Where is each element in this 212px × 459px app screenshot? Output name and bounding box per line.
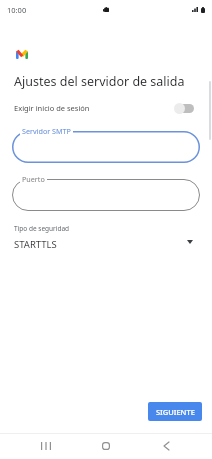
staticText: Tipo de seguridad <box>14 224 70 233</box>
button[interactable]: Tipo de seguridad <box>0 224 212 251</box>
staticText: Puerto <box>22 174 45 184</box>
staticText: Servidor SMTP <box>22 126 71 136</box>
staticText: SIGUIENTE <box>156 407 195 417</box>
staticText: Exigir inicio de sesión <box>14 103 90 113</box>
button[interactable]: Exigir inicio de sesión <box>0 98 212 118</box>
staticText: Ajustes del servidor de salida <box>14 73 185 90</box>
button[interactable]: Servidor SMTP <box>12 131 200 163</box>
button[interactable]: SIGUIENTE <box>148 402 202 421</box>
staticText: 10:00 <box>7 5 27 15</box>
button[interactable]: Recents <box>26 434 66 459</box>
button[interactable]: Puerto <box>12 179 200 211</box>
button[interactable]: Exigir inicio de sesión <box>174 102 194 114</box>
button[interactable]: Back <box>146 434 186 459</box>
button[interactable]: Home <box>86 434 126 459</box>
staticText: STARTTLS <box>14 238 57 251</box>
